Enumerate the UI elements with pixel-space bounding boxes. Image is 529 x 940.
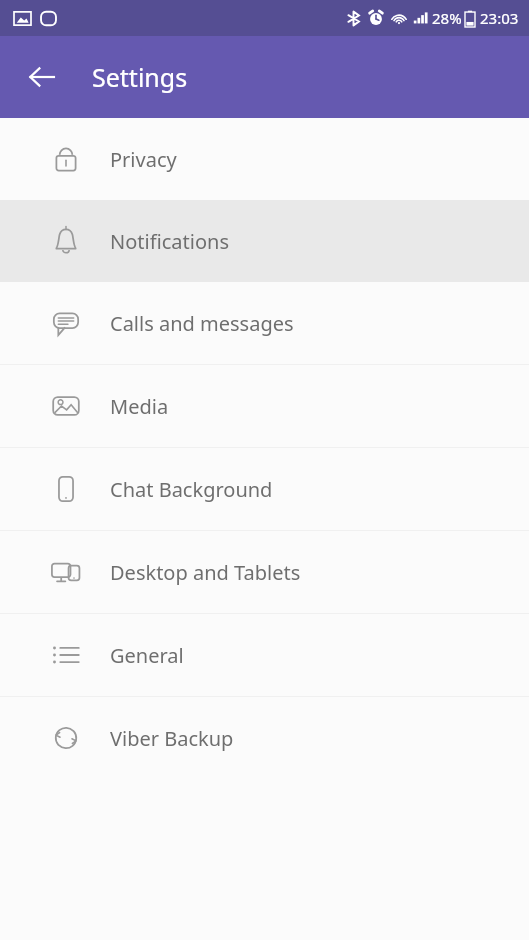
staticText: 23:03	[480, 8, 519, 28]
staticText: Chat Background	[110, 476, 273, 503]
staticText: Desktop and Tablets	[110, 559, 301, 586]
staticText: Media	[110, 393, 169, 420]
button[interactable]: Back	[16, 51, 68, 103]
staticText: Notifications	[110, 228, 229, 255]
button[interactable]: Calls and messages	[0, 282, 529, 364]
staticText: 28%	[432, 8, 462, 28]
button[interactable]: Viber Backup	[0, 697, 529, 779]
staticText: General	[110, 642, 184, 669]
button[interactable]: Chat Background	[0, 448, 529, 530]
staticText: Calls and messages	[110, 310, 294, 337]
button[interactable]: General	[0, 614, 529, 696]
button[interactable]: Media	[0, 365, 529, 447]
button[interactable]: Desktop and Tablets	[0, 531, 529, 613]
staticText: Privacy	[110, 146, 177, 173]
button[interactable]: Notifications	[0, 200, 529, 282]
button[interactable]: Privacy	[0, 118, 529, 200]
staticText: Viber Backup	[110, 725, 234, 752]
staticText: Settings	[92, 60, 188, 94]
